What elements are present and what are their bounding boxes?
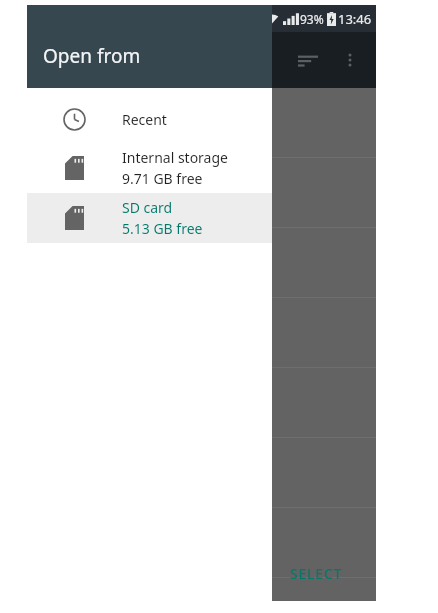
staticText: 93%: [300, 11, 324, 27]
staticText: Recent: [122, 110, 167, 129]
staticText: 9.71 GB free: [122, 169, 203, 188]
staticText: SD card: [122, 198, 173, 217]
button[interactable]: Internal storage: [27, 143, 272, 193]
button[interactable]: More options: [330, 40, 370, 80]
staticText: SELECT: [290, 564, 343, 583]
button[interactable]: Recent: [27, 96, 272, 143]
button[interactable]: SELECT: [256, 545, 376, 601]
button[interactable]: SD card: [27, 193, 272, 243]
staticText: Internal storage: [122, 148, 228, 167]
staticText: Open from: [43, 43, 141, 69]
staticText: 13:46: [338, 10, 372, 28]
staticText: 5.13 GB free: [122, 219, 203, 238]
button[interactable]: Sort: [286, 38, 330, 82]
